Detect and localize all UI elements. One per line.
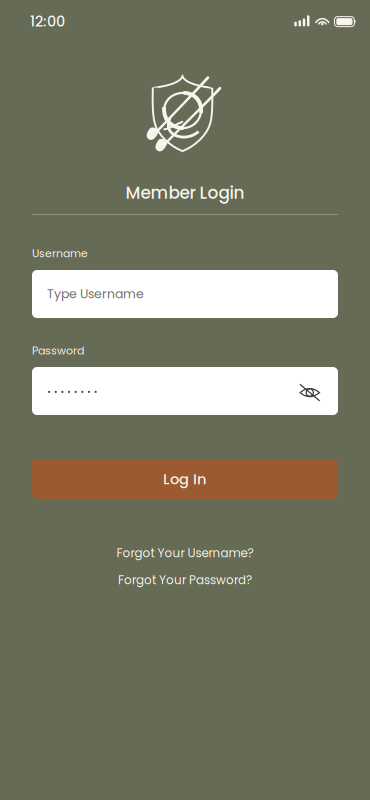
staticText: Forgot Your Username?	[116, 545, 253, 561]
button[interactable]: Forgot Your Password?	[0, 569, 370, 591]
staticText: Type Username	[47, 285, 144, 303]
staticText: Forgot Your Password?	[118, 572, 252, 588]
staticText: Password	[32, 343, 84, 358]
staticText: 12:00	[30, 11, 65, 32]
staticText: Member Login	[125, 181, 244, 205]
button[interactable]: Type Username	[32, 270, 338, 318]
button[interactable]: Log In	[32, 459, 338, 499]
button[interactable]	[32, 367, 338, 415]
staticText: Log In	[163, 469, 207, 489]
button[interactable]: Forgot Your Username?	[0, 542, 370, 564]
staticText: Username	[32, 246, 88, 261]
